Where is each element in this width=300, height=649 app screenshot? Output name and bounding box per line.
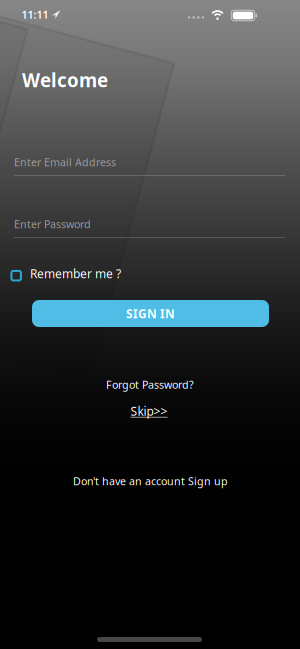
- staticText: Enter Password: [14, 217, 91, 231]
- button[interactable]: SIGN IN: [32, 300, 269, 327]
- button[interactable]: Enter Password: [0, 213, 300, 249]
- staticText: 11:11: [21, 7, 48, 22]
- button[interactable]: Skip>>: [122, 395, 175, 427]
- staticText: Skip>>: [130, 403, 167, 419]
- button[interactable]: Forgot Password?: [98, 369, 202, 400]
- button[interactable]: Don't have an account Sign up: [65, 466, 236, 496]
- staticText: SIGN IN: [126, 305, 175, 321]
- staticText: Enter Email Address: [14, 155, 116, 169]
- button[interactable]: Remember me ?: [0, 262, 300, 286]
- staticText: Welcome: [22, 68, 108, 92]
- button[interactable]: Enter Email Address: [0, 151, 300, 187]
- staticText: Remember me ?: [30, 265, 121, 281]
- staticText: Don't have an account Sign up: [73, 474, 228, 488]
- staticText: Forgot Password?: [106, 377, 194, 392]
